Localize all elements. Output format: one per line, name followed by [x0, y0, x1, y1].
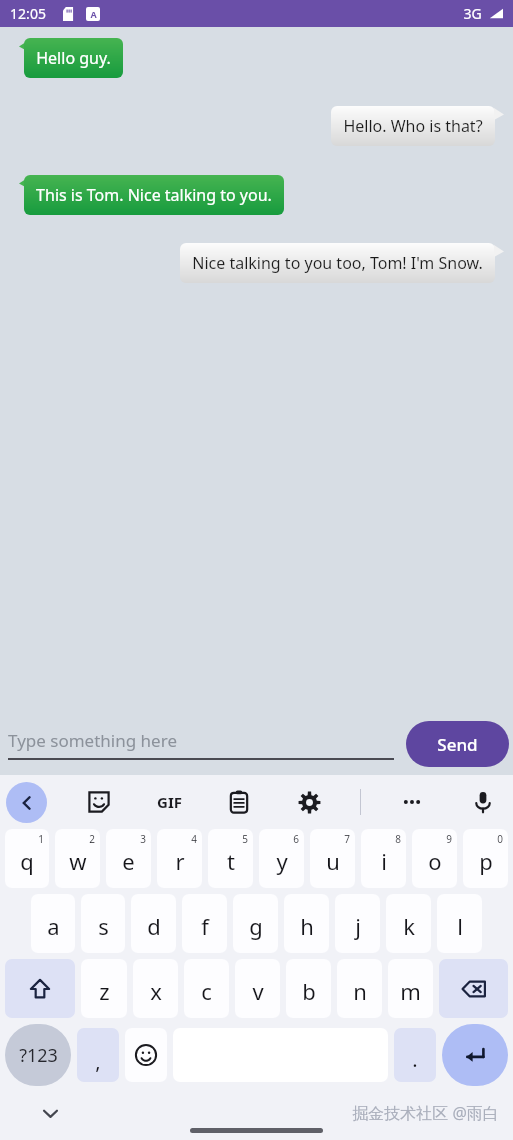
- staticText: x: [150, 976, 162, 1006]
- button[interactable]: j: [335, 894, 380, 953]
- staticText: This is Tom. Nice talking to you.: [36, 184, 272, 206]
- staticText: e: [122, 846, 135, 876]
- button[interactable]: a: [31, 894, 75, 953]
- staticText: 9: [446, 832, 452, 846]
- staticText: 0: [497, 832, 503, 846]
- button[interactable]: Enter: [442, 1024, 508, 1086]
- button[interactable]: k: [386, 894, 431, 953]
- staticText: Nice talking to you too, Tom! I'm Snow.: [192, 252, 483, 274]
- button[interactable]: b: [286, 959, 331, 1018]
- staticText: u: [326, 846, 340, 876]
- staticText: s: [98, 911, 109, 941]
- button[interactable]: l: [437, 894, 482, 953]
- button[interactable]: Back: [6, 782, 47, 823]
- staticText: 3G: [463, 4, 482, 23]
- button[interactable]: GIF: [150, 783, 188, 821]
- staticText: GIF: [157, 792, 182, 812]
- staticText: Type something here: [8, 729, 177, 752]
- button[interactable]: Emoji: [125, 1028, 167, 1082]
- staticText: Hello guy.: [36, 47, 111, 69]
- button[interactable]: x: [133, 959, 178, 1018]
- staticText: 5: [242, 832, 248, 846]
- button[interactable]: ,: [77, 1028, 119, 1082]
- staticText: 6: [293, 832, 299, 846]
- button[interactable]: p: [463, 829, 508, 888]
- button[interactable]: Shift: [5, 959, 75, 1018]
- staticText: 12:05: [10, 4, 46, 23]
- staticText: 2: [89, 832, 95, 846]
- button[interactable]: Clipboard: [220, 783, 258, 821]
- staticText: w: [69, 846, 87, 876]
- button[interactable]: s: [81, 894, 125, 953]
- staticText: Send: [437, 733, 478, 756]
- staticText: a: [47, 911, 60, 941]
- staticText: q: [20, 846, 34, 876]
- staticText: z: [99, 976, 110, 1006]
- staticText: 掘金技术社区 @雨白: [352, 1102, 499, 1124]
- staticText: .: [412, 1046, 418, 1073]
- staticText: d: [147, 911, 161, 941]
- staticText: b: [302, 976, 316, 1006]
- staticText: k: [403, 911, 415, 941]
- button[interactable]: Hide keyboard: [34, 1097, 66, 1129]
- button[interactable]: Voice input: [463, 782, 503, 822]
- staticText: 3: [140, 832, 146, 846]
- button[interactable]: e: [106, 829, 151, 888]
- button[interactable]: Type something here: [8, 729, 400, 760]
- button[interactable]: v: [235, 959, 280, 1018]
- button[interactable]: Stickers: [80, 783, 118, 821]
- staticText: l: [457, 911, 463, 941]
- staticText: c: [201, 976, 212, 1006]
- button[interactable]: d: [131, 894, 176, 953]
- button[interactable]: This is Tom. Nice talking to you.: [24, 175, 284, 215]
- staticText: i: [381, 846, 387, 876]
- button[interactable]: f: [182, 894, 227, 953]
- button[interactable]: .: [394, 1028, 436, 1082]
- button[interactable]: g: [233, 894, 278, 953]
- staticText: Hello. Who is that?: [343, 115, 483, 137]
- staticText: ,: [95, 1048, 101, 1075]
- staticText: ?123: [19, 1043, 58, 1068]
- staticText: o: [428, 846, 442, 876]
- button[interactable]: o: [412, 829, 457, 888]
- button[interactable]: r: [157, 829, 202, 888]
- staticText: f: [201, 911, 209, 941]
- button[interactable]: u: [310, 829, 355, 888]
- button[interactable]: Nice talking to you too, Tom! I'm Snow.: [180, 243, 495, 283]
- staticText: 8: [395, 832, 401, 846]
- button[interactable]: Hello. Who is that?: [331, 106, 495, 146]
- button[interactable]: h: [284, 894, 329, 953]
- staticText: t: [227, 846, 235, 876]
- button[interactable]: q: [5, 829, 49, 888]
- staticText: 4: [191, 832, 197, 846]
- button[interactable]: n: [337, 959, 382, 1018]
- button[interactable]: i: [361, 829, 406, 888]
- staticText: v: [252, 976, 264, 1006]
- staticText: h: [300, 911, 314, 941]
- staticText: A: [90, 8, 97, 20]
- staticText: m: [400, 976, 421, 1006]
- button[interactable]: More options: [393, 783, 431, 821]
- button[interactable]: z: [81, 959, 127, 1018]
- staticText: 7: [344, 832, 350, 846]
- staticText: r: [175, 846, 185, 876]
- button[interactable]: y: [259, 829, 304, 888]
- button[interactable]: c: [184, 959, 229, 1018]
- button[interactable]: w: [55, 829, 100, 888]
- button[interactable]: Backspace: [439, 959, 508, 1018]
- button[interactable]: ?123: [5, 1024, 71, 1086]
- staticText: y: [276, 846, 288, 876]
- staticText: 1: [38, 832, 44, 846]
- button[interactable]: Hello guy.: [24, 38, 123, 78]
- button[interactable]: Settings: [290, 783, 328, 821]
- staticText: g: [249, 911, 263, 941]
- button[interactable]: Send: [406, 721, 509, 767]
- button[interactable]: t: [208, 829, 253, 888]
- button[interactable]: m: [388, 959, 433, 1018]
- staticText: j: [355, 911, 361, 941]
- staticText: n: [353, 976, 367, 1006]
- staticText: p: [479, 846, 493, 876]
